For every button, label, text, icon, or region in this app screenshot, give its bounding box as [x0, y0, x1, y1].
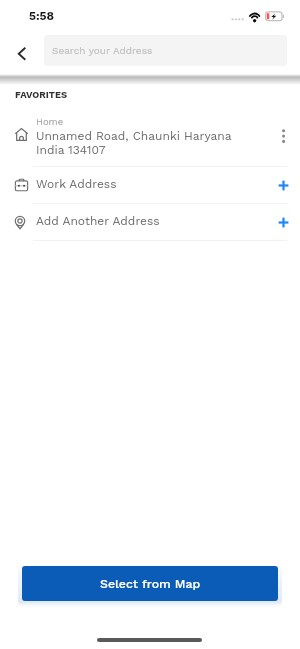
button[interactable]: Work Address: [0, 167, 300, 203]
staticText: Home: [36, 116, 64, 127]
button[interactable]: Add Another Address: [0, 204, 300, 240]
button[interactable]: Add Add Another Address: [271, 210, 295, 234]
button[interactable]: Select from Map: [22, 566, 278, 601]
button[interactable]: Back: [8, 39, 34, 67]
staticText: Work Address: [36, 177, 117, 191]
button[interactable]: Add Work Address: [271, 173, 295, 197]
staticText: FAVORITES: [15, 89, 68, 100]
staticText: Unnamed Road, Chaunki Haryana India 1341…: [36, 129, 232, 157]
button[interactable]: More options: [272, 120, 296, 144]
staticText: 5:58: [29, 9, 55, 23]
button[interactable]: Search your Address: [44, 35, 287, 66]
staticText: Add Another Address: [36, 214, 160, 228]
staticText: Search your Address: [52, 45, 153, 57]
staticText: Select from Map: [100, 577, 201, 591]
button[interactable]: Home: [0, 110, 300, 166]
